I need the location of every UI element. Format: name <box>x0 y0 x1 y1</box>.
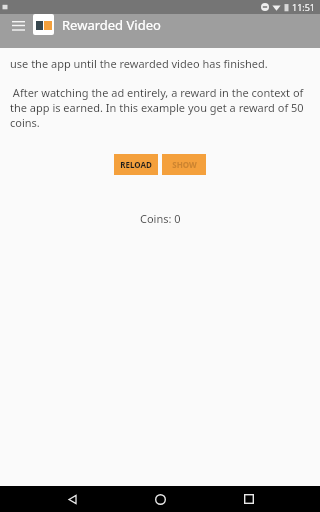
button[interactable]: Recent apps <box>232 486 266 512</box>
button[interactable]: SHOW <box>162 154 206 175</box>
staticText: Rewarded Video <box>62 16 161 34</box>
button[interactable]: Home <box>143 486 177 512</box>
staticText: SHOW <box>172 159 197 170</box>
staticText: use the app until the rewarded video has… <box>10 56 268 71</box>
button[interactable]: RELOAD <box>114 154 158 175</box>
staticText: After watching the ad entirely, a reward… <box>10 85 308 130</box>
button[interactable]: Open navigation drawer <box>8 15 28 35</box>
button[interactable]: Back <box>55 486 89 512</box>
staticText: RELOAD <box>120 159 152 170</box>
staticText: Coins: 0 <box>140 211 181 226</box>
staticText: 11:51 <box>292 1 316 13</box>
